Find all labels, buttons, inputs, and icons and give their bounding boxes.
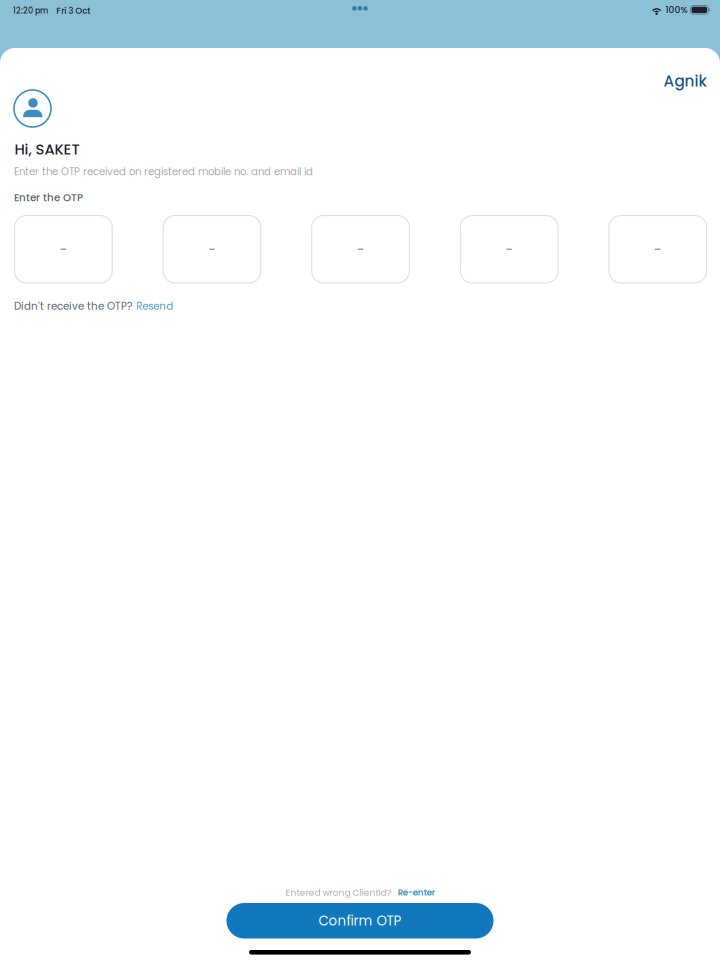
button[interactable]: Re-enter [398, 887, 435, 898]
button[interactable]: Agnik [663, 70, 706, 92]
staticText: Fri 3 Oct [56, 4, 90, 17]
button[interactable]: Confirm OTP [226, 903, 493, 938]
button[interactable]: OTP digit [460, 215, 558, 283]
staticText: 12:20 pm [13, 5, 48, 16]
staticText: Re-enter [398, 887, 435, 898]
staticText: Resend [136, 299, 173, 313]
staticText: Didn't receive the OTP? [14, 299, 132, 313]
button[interactable]: OTP digit [14, 215, 112, 283]
button[interactable]: OTP digit [312, 215, 409, 283]
staticText: 100% [665, 3, 687, 16]
staticText: Enter the OTP [14, 190, 83, 205]
button[interactable]: OTP digit [163, 215, 261, 283]
button[interactable]: Resend [136, 299, 173, 313]
staticText: Entered wrong ClientId? [285, 886, 391, 899]
staticText: Confirm OTP [318, 911, 401, 930]
button[interactable]: OTP digit [609, 215, 707, 283]
button[interactable]: Profile [14, 90, 51, 127]
staticText: Enter the OTP received on registered mob… [14, 164, 313, 179]
staticText: Agnik [663, 70, 706, 92]
staticText: Hi, SAKET [14, 139, 79, 159]
